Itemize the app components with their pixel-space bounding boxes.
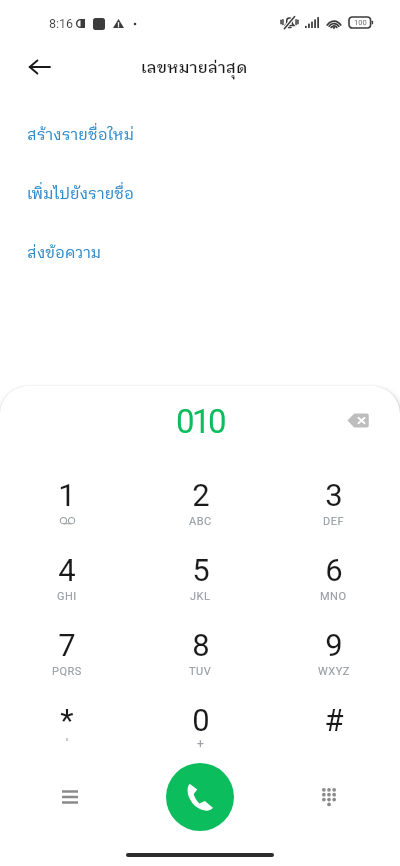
button[interactable]: เพิ่มไปยังรายชื่อ	[0, 165, 400, 224]
button[interactable]: 1	[0, 458, 134, 533]
button[interactable]: Back	[17, 45, 61, 89]
staticText: WXYZ	[318, 665, 350, 678]
button[interactable]: 5	[134, 533, 267, 608]
staticText: 9	[325, 627, 343, 663]
button[interactable]: #	[267, 683, 400, 758]
staticText: 010	[176, 402, 225, 441]
staticText: 3	[325, 477, 343, 513]
staticText: สร้างรายชื่อใหม่	[27, 123, 135, 149]
button[interactable]: 8	[134, 608, 267, 683]
staticText: 7	[58, 627, 76, 663]
staticText: 8:16	[49, 16, 74, 31]
staticText: 4	[58, 552, 76, 588]
staticText: ส่งข้อความ	[27, 241, 102, 267]
staticText: 8	[192, 627, 210, 663]
staticText: 6	[325, 552, 343, 588]
staticText: เพิ่มไปยังรายชื่อ	[27, 182, 134, 208]
button[interactable]: 9	[267, 608, 400, 683]
button[interactable]: 3	[267, 458, 400, 533]
button[interactable]: สร้างรายชื่อใหม่	[0, 106, 400, 165]
button[interactable]: 7	[0, 608, 134, 683]
button[interactable]: Call log	[48, 775, 92, 819]
staticText: *	[60, 702, 74, 738]
staticText: JKL	[190, 590, 211, 603]
button[interactable]: 2	[134, 458, 267, 533]
button[interactable]: 4	[0, 533, 134, 608]
staticText: 1	[58, 477, 76, 513]
button[interactable]: 0	[134, 683, 267, 758]
button[interactable]: Backspace	[337, 399, 379, 441]
staticText: PQRS	[52, 665, 82, 678]
button[interactable]: ส่งข้อความ	[0, 224, 400, 283]
staticText: MNO	[320, 590, 347, 603]
staticText: GHI	[57, 590, 77, 603]
button[interactable]: Dialpad	[307, 775, 351, 819]
button[interactable]: Call	[166, 763, 234, 831]
staticText: +	[197, 737, 205, 751]
staticText: '	[66, 737, 69, 751]
staticText: ABC	[189, 515, 212, 528]
staticText: เลขหมายล่าสุด	[141, 55, 248, 81]
staticText: 100	[354, 18, 367, 27]
staticText: 2	[192, 477, 210, 513]
button[interactable]: *	[0, 683, 134, 758]
staticText: 5	[192, 552, 210, 588]
staticText: TUV	[189, 665, 212, 678]
staticText: DEF	[323, 515, 345, 528]
staticText: #	[324, 702, 344, 738]
button[interactable]: 6	[267, 533, 400, 608]
staticText: 0	[192, 702, 210, 738]
